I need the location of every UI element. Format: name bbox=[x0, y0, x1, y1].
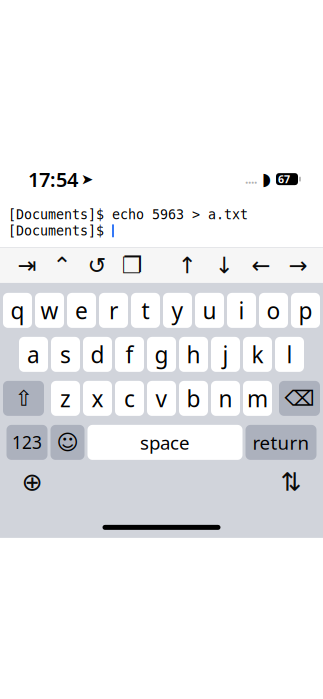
staticText: n bbox=[218, 383, 232, 413]
staticText: b bbox=[186, 383, 200, 413]
button[interactable]: h bbox=[179, 337, 208, 372]
staticText: ➤ bbox=[81, 171, 93, 187]
button[interactable]: j bbox=[211, 337, 240, 372]
button[interactable]: Next keyboard bbox=[14, 466, 50, 498]
staticText: ◗ bbox=[262, 169, 271, 189]
staticText: ⌫ bbox=[284, 386, 314, 410]
staticText: a bbox=[27, 339, 40, 369]
staticText: y bbox=[171, 295, 183, 325]
staticText: i bbox=[238, 295, 244, 325]
button[interactable]: v bbox=[147, 381, 176, 416]
button[interactable]: x bbox=[83, 381, 112, 416]
staticText: c bbox=[124, 383, 135, 413]
staticText: g bbox=[154, 339, 168, 369]
button[interactable]: return bbox=[245, 425, 316, 460]
button[interactable]: Down bbox=[213, 250, 235, 280]
button[interactable]: y bbox=[163, 293, 192, 328]
button[interactable]: Numbers bbox=[6, 425, 47, 460]
staticText: p bbox=[298, 295, 312, 325]
button[interactable]: Left bbox=[250, 250, 272, 280]
button[interactable]: a bbox=[19, 337, 48, 372]
staticText: q bbox=[10, 295, 24, 325]
button[interactable]: t bbox=[131, 293, 160, 328]
button[interactable]: m bbox=[243, 381, 272, 416]
button[interactable]: g bbox=[147, 337, 176, 372]
staticText: ↓ bbox=[214, 252, 233, 278]
staticText: o bbox=[266, 295, 280, 325]
button[interactable]: Emoji bbox=[50, 425, 84, 460]
button[interactable]: i bbox=[227, 293, 256, 328]
button[interactable]: b bbox=[179, 381, 208, 416]
staticText: r bbox=[109, 295, 118, 325]
staticText: .... bbox=[245, 171, 257, 187]
staticText: k bbox=[251, 339, 263, 369]
staticText: ☺ bbox=[56, 430, 78, 454]
staticText: ⌃ bbox=[52, 252, 71, 278]
staticText: l bbox=[286, 339, 292, 369]
button[interactable]: r bbox=[99, 293, 128, 328]
button[interactable]: Shift bbox=[3, 381, 44, 416]
button[interactable]: z bbox=[51, 381, 80, 416]
staticText: ← bbox=[251, 252, 270, 278]
staticText: z bbox=[60, 383, 71, 413]
staticText: ⊕ bbox=[21, 467, 42, 496]
button[interactable]: w bbox=[35, 293, 64, 328]
button[interactable]: s bbox=[51, 337, 80, 372]
button[interactable]: Dictation bbox=[273, 466, 309, 498]
button[interactable]: u bbox=[195, 293, 224, 328]
staticText: 67 bbox=[278, 172, 290, 186]
button[interactable]: p bbox=[291, 293, 320, 328]
staticText: j bbox=[222, 339, 228, 369]
staticText: e bbox=[75, 295, 88, 325]
button[interactable]: Control bbox=[51, 250, 73, 280]
staticText: ⇧ bbox=[14, 386, 32, 410]
button[interactable]: k bbox=[243, 337, 272, 372]
button[interactable]: e bbox=[67, 293, 96, 328]
staticText: → bbox=[288, 252, 307, 278]
staticText: v bbox=[155, 383, 167, 413]
staticText: m bbox=[247, 383, 268, 413]
staticText: 123 bbox=[12, 431, 42, 454]
staticText: t bbox=[141, 295, 149, 325]
button[interactable]: o bbox=[259, 293, 288, 328]
staticText: u bbox=[202, 295, 216, 325]
staticText: ↑ bbox=[177, 252, 196, 278]
staticText: ⇅ bbox=[280, 467, 301, 496]
button[interactable]: Up bbox=[176, 250, 198, 280]
staticText: w bbox=[40, 295, 58, 325]
staticText: ❐ bbox=[122, 252, 142, 278]
staticText: s bbox=[60, 339, 71, 369]
button[interactable]: Tab bbox=[16, 250, 38, 280]
staticText: ⇥ bbox=[17, 252, 36, 278]
staticText: space bbox=[140, 430, 190, 455]
staticText: [Documents]$ bbox=[8, 223, 112, 238]
button[interactable]: Right bbox=[287, 250, 309, 280]
button[interactable]: Paste bbox=[121, 250, 143, 280]
staticText: 17:54 bbox=[28, 166, 78, 192]
button[interactable]: c bbox=[115, 381, 144, 416]
button[interactable]: Undo bbox=[86, 250, 108, 280]
button[interactable]: f bbox=[115, 337, 144, 372]
button[interactable]: q bbox=[3, 293, 32, 328]
button[interactable]: n bbox=[211, 381, 240, 416]
staticText: h bbox=[186, 339, 200, 369]
staticText: x bbox=[91, 383, 103, 413]
staticText: d bbox=[90, 339, 104, 369]
button[interactable]: d bbox=[83, 337, 112, 372]
staticText: f bbox=[125, 339, 133, 369]
staticText: return bbox=[252, 430, 309, 455]
button[interactable]: Delete bbox=[279, 381, 320, 416]
staticText: ↺ bbox=[87, 252, 106, 278]
button[interactable]: space bbox=[87, 425, 242, 460]
staticText: [Documents]$ echo 5963 > a.txt bbox=[8, 207, 248, 222]
button[interactable]: l bbox=[275, 337, 304, 372]
